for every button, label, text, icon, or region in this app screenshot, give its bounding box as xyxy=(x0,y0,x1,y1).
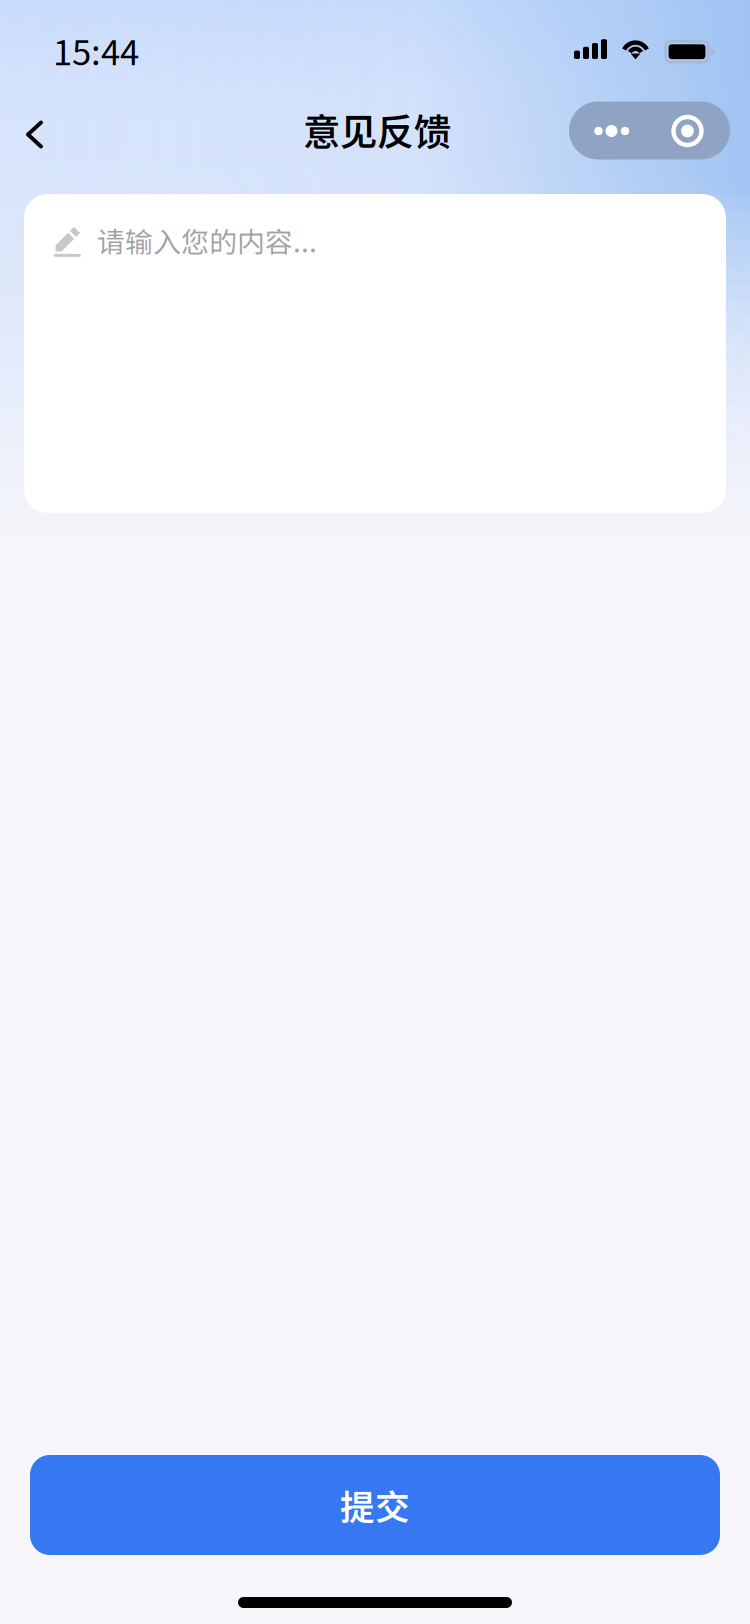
button[interactable]: 更多 xyxy=(569,101,730,159)
button[interactable]: 返回 xyxy=(9,103,67,164)
staticText: 意见反馈 xyxy=(303,102,451,157)
staticText: 请输入您的内容... xyxy=(97,220,317,260)
button[interactable]: 提交 xyxy=(30,1455,720,1555)
staticText: 15:44 xyxy=(53,25,139,75)
staticText: 提交 xyxy=(340,1480,410,1530)
